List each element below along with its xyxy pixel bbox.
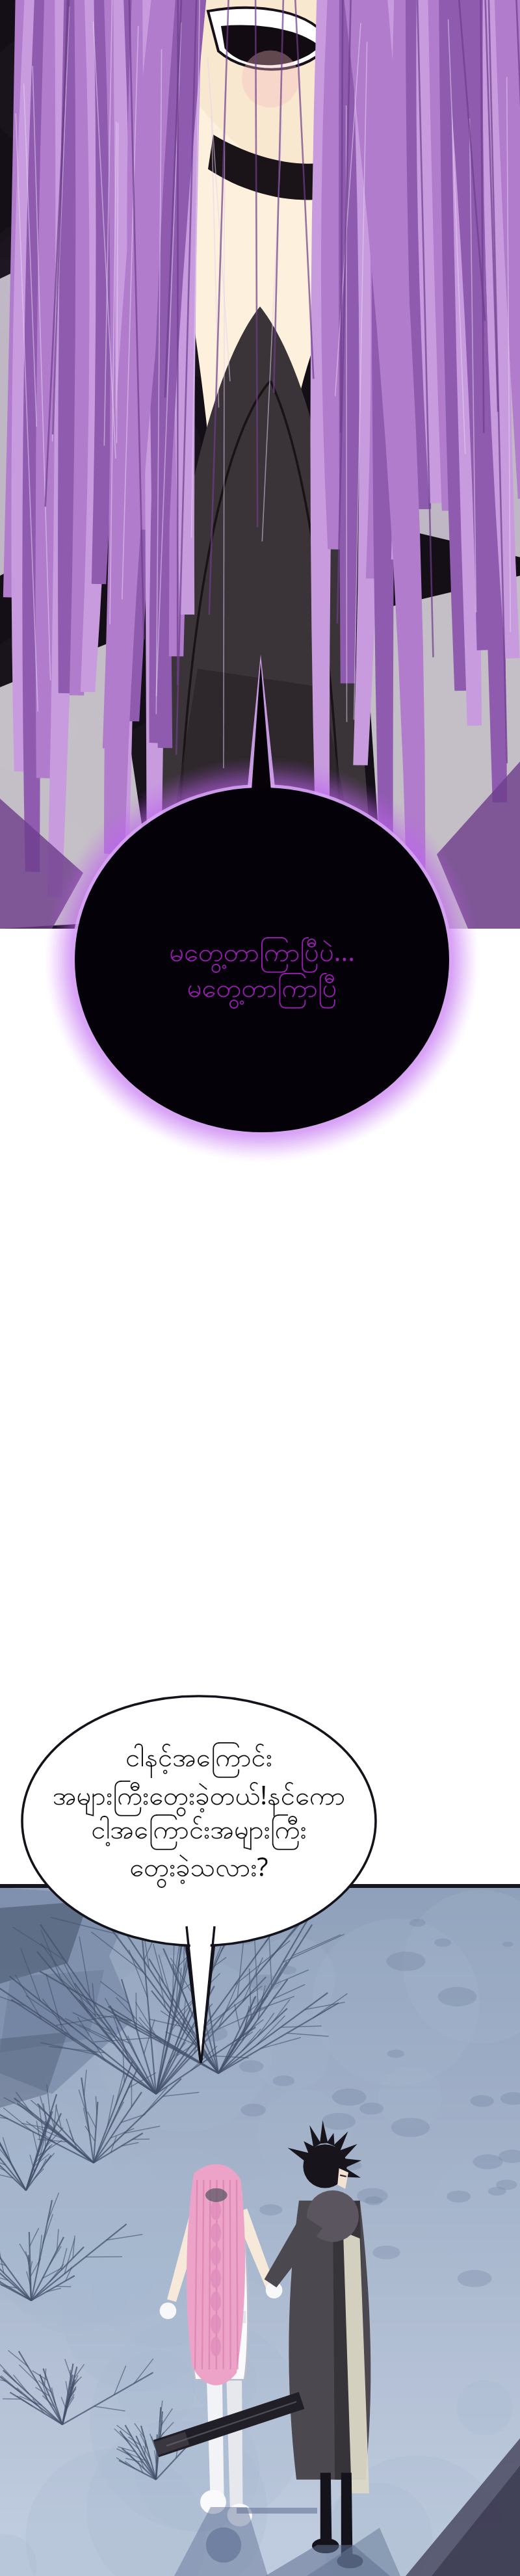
- button[interactable]: Webtoon comic page: [0, 0, 520, 2576]
